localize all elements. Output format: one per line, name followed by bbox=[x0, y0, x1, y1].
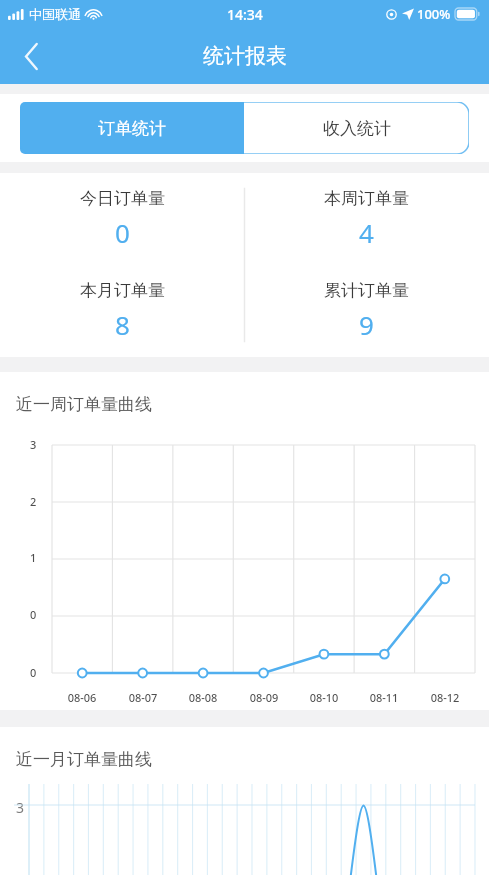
staticText: 4 bbox=[359, 215, 374, 250]
staticText: 统计报表 bbox=[203, 43, 287, 69]
staticText: 中国联通 bbox=[29, 6, 81, 22]
staticText: 08-08 bbox=[178, 690, 228, 705]
button[interactable]: 收入统计 bbox=[244, 102, 469, 154]
button[interactable]: 本周订单量 bbox=[244, 173, 489, 265]
button[interactable]: 累计订单量 bbox=[244, 265, 489, 357]
staticText: 08-10 bbox=[299, 690, 349, 705]
staticText: 2 bbox=[30, 494, 37, 509]
button[interactable]: 订单统计 bbox=[20, 102, 244, 154]
button[interactable]: 本月订单量 bbox=[0, 265, 244, 357]
staticText: 0 bbox=[30, 665, 37, 680]
staticText: 1 bbox=[30, 550, 37, 565]
staticText: 08-07 bbox=[118, 690, 168, 705]
staticText: 9 bbox=[359, 307, 374, 342]
staticText: 8 bbox=[115, 307, 130, 342]
staticText: 今日订单量 bbox=[80, 188, 165, 209]
staticText: 本周订单量 bbox=[324, 188, 409, 209]
staticText: 14:34 bbox=[227, 5, 263, 24]
staticText: 3 bbox=[16, 798, 25, 817]
staticText: 收入统计 bbox=[323, 118, 391, 139]
staticText: 08-12 bbox=[420, 690, 470, 705]
staticText: 本月订单量 bbox=[80, 280, 165, 301]
staticText: 08-09 bbox=[239, 690, 289, 705]
staticText: 近一月订单量曲线 bbox=[16, 749, 152, 770]
staticText: 3 bbox=[30, 437, 37, 452]
staticText: 08-11 bbox=[359, 690, 409, 705]
staticText: 08-06 bbox=[57, 690, 107, 705]
button[interactable]: 今日订单量 bbox=[0, 173, 244, 265]
staticText: 订单统计 bbox=[98, 118, 166, 139]
button[interactable]: Back bbox=[0, 28, 62, 84]
staticText: 0 bbox=[30, 607, 37, 622]
staticText: 0 bbox=[115, 215, 130, 250]
staticText: 近一周订单量曲线 bbox=[16, 394, 152, 415]
staticText: 累计订单量 bbox=[324, 280, 409, 301]
staticText: 100% bbox=[417, 5, 451, 23]
